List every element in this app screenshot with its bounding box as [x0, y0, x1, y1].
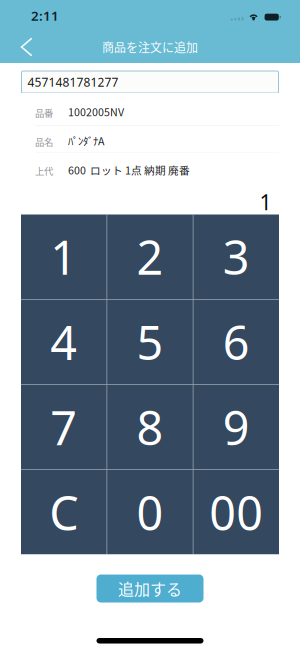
button[interactable]: 3 [193, 214, 279, 299]
staticText: 9 [223, 396, 250, 458]
staticText: 7 [50, 396, 77, 458]
staticText: 0 [136, 481, 163, 543]
staticText: 上代 [35, 164, 53, 177]
staticText: 6 [223, 311, 250, 373]
button[interactable]: Back [0, 31, 44, 63]
staticText: 品番 [35, 106, 53, 119]
staticText: 1002005NV [68, 104, 124, 119]
staticText: 8 [136, 396, 163, 458]
button[interactable]: 8 [107, 385, 193, 469]
button[interactable]: 0 [107, 470, 193, 555]
staticText: 3 [223, 226, 250, 288]
button[interactable]: 5 [107, 300, 193, 384]
staticText: 2:11 [31, 7, 59, 24]
staticText: 4 [50, 311, 77, 373]
staticText: 2 [136, 226, 163, 288]
staticText: 1 [50, 226, 77, 288]
staticText: 4571481781277 [27, 74, 118, 90]
button[interactable]: 1 [21, 214, 107, 299]
staticText: 商品を注文に追加 [102, 38, 198, 56]
staticText: 5 [136, 311, 163, 373]
button[interactable]: 4 [21, 300, 107, 384]
button[interactable]: 7 [21, 385, 107, 469]
staticText: 00 [209, 481, 263, 543]
button[interactable]: 2 [107, 214, 193, 299]
staticText: 1 [259, 188, 271, 216]
button[interactable]: 6 [193, 300, 279, 384]
staticText: 追加する [118, 577, 182, 600]
button[interactable]: 9 [193, 385, 279, 469]
staticText: ﾊﾟﾝﾀﾞﾅA [68, 133, 104, 148]
staticText: 600 ロット 1点 納期 廃番 [68, 162, 190, 177]
button[interactable]: 追加する [96, 574, 203, 602]
button[interactable]: 00 [193, 470, 279, 555]
button[interactable]: C [21, 470, 107, 555]
staticText: 品名 [35, 135, 53, 148]
staticText: C [49, 481, 78, 543]
